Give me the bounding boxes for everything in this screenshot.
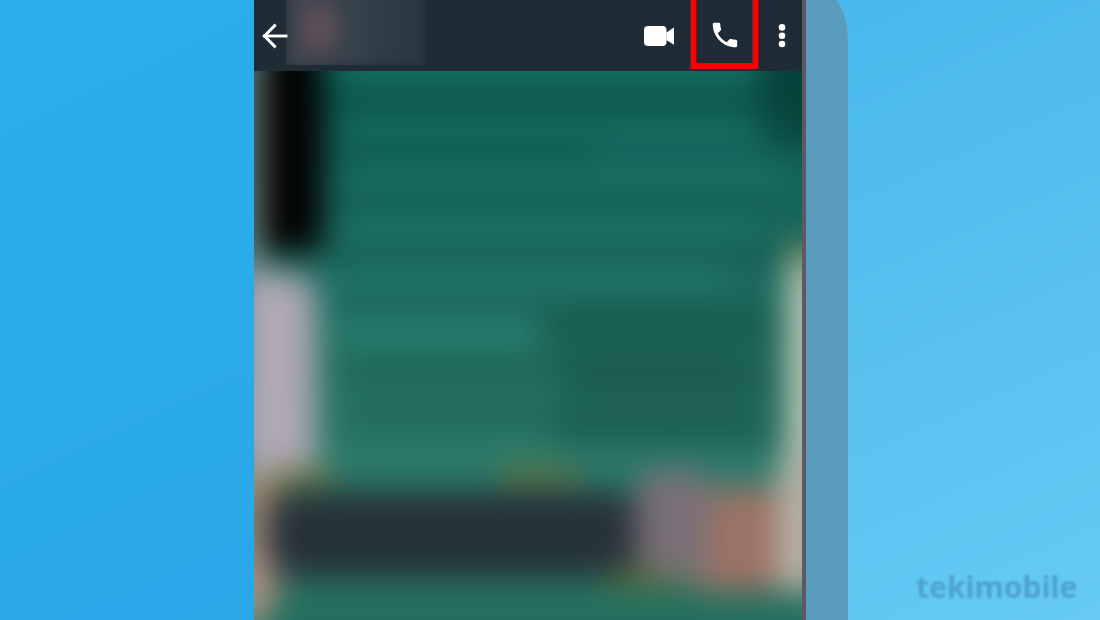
button[interactable]: Video call bbox=[630, 0, 688, 71]
button[interactable]: More options bbox=[760, 0, 804, 71]
staticText: tekimobile bbox=[916, 566, 1078, 607]
button[interactable]: Voice call bbox=[691, 0, 758, 71]
button[interactable]: Back bbox=[250, 0, 298, 71]
